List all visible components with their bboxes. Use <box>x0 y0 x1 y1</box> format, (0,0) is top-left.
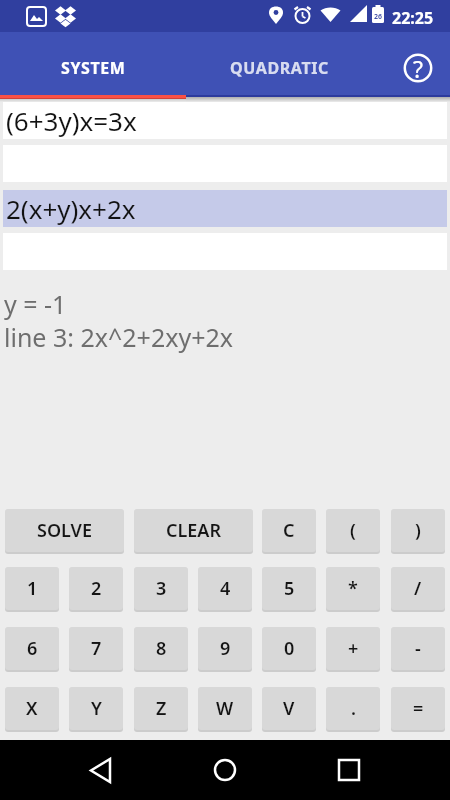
button[interactable]: 0 <box>262 627 316 670</box>
staticText: 26 <box>374 12 383 22</box>
button[interactable]: / <box>391 567 445 610</box>
button[interactable]: 1 <box>5 567 59 610</box>
button[interactable]: Y <box>69 687 123 730</box>
staticText: 5 <box>284 576 295 601</box>
staticText: 4 <box>220 576 231 601</box>
staticText: CLEAR <box>166 518 222 543</box>
button[interactable]: 8 <box>134 627 188 670</box>
staticText: 2(x+y)x+2x <box>6 191 136 226</box>
staticText: SOLVE <box>37 518 92 543</box>
staticText: W <box>216 696 234 721</box>
button[interactable]: 2(x+y)x+2x <box>3 190 447 227</box>
button[interactable]: - <box>391 627 445 670</box>
button[interactable]: + <box>326 627 380 670</box>
staticText: 8 <box>156 636 167 661</box>
button[interactable]: CLEAR <box>134 509 253 552</box>
staticText: . <box>351 696 356 721</box>
button[interactable]: 3 <box>134 567 188 610</box>
staticText: * <box>348 576 358 601</box>
staticText: C <box>283 518 295 543</box>
button[interactable]: V <box>262 687 316 730</box>
staticText: / <box>414 576 422 601</box>
button[interactable]: (6+3y)x=3x <box>3 102 447 139</box>
staticText: y = -1 <box>4 287 67 321</box>
button[interactable]: ? <box>403 53 433 83</box>
button[interactable] <box>203 748 247 792</box>
staticText: (6+3y)x=3x <box>6 103 137 138</box>
staticText: 22:25 <box>392 7 434 29</box>
button[interactable]: SYSTEM <box>0 32 186 95</box>
staticText: 9 <box>220 636 231 661</box>
button[interactable]: Z <box>134 687 188 730</box>
staticText: 2 <box>91 576 102 601</box>
staticText: ( <box>350 518 356 543</box>
button[interactable]: ( <box>326 509 380 552</box>
button[interactable]: 7 <box>69 627 123 670</box>
staticText: 3 <box>156 576 167 601</box>
button[interactable]: 5 <box>262 567 316 610</box>
staticText: 7 <box>91 636 102 661</box>
button[interactable] <box>327 748 371 792</box>
staticText: 0 <box>284 636 295 661</box>
staticText: ) <box>415 518 421 543</box>
staticText: line 3: 2x^2+2xy+2x <box>4 320 233 354</box>
button[interactable]: W <box>198 687 252 730</box>
button[interactable]: . <box>326 687 380 730</box>
staticText: + <box>348 636 359 661</box>
button[interactable]: ) <box>391 509 445 552</box>
staticText: Z <box>156 696 167 721</box>
button[interactable]: * <box>326 567 380 610</box>
button[interactable]: = <box>391 687 445 730</box>
staticText: 6 <box>27 636 38 661</box>
staticText: SYSTEM <box>61 57 126 79</box>
button[interactable]: 2 <box>69 567 123 610</box>
button[interactable]: QUADRATIC <box>186 32 372 95</box>
staticText: X <box>26 696 38 721</box>
staticText: V <box>283 696 295 721</box>
staticText: - <box>415 636 421 661</box>
button[interactable]: 6 <box>5 627 59 670</box>
staticText: 1 <box>27 576 38 601</box>
button[interactable]: SOLVE <box>5 509 124 552</box>
button[interactable] <box>78 748 122 792</box>
staticText: Y <box>91 696 102 721</box>
staticText: ? <box>413 53 423 83</box>
staticText: QUADRATIC <box>230 57 329 79</box>
button[interactable]: 4 <box>198 567 252 610</box>
button[interactable]: 9 <box>198 627 252 670</box>
button[interactable]: C <box>262 509 316 552</box>
staticText: = <box>413 696 424 721</box>
button[interactable]: X <box>5 687 59 730</box>
